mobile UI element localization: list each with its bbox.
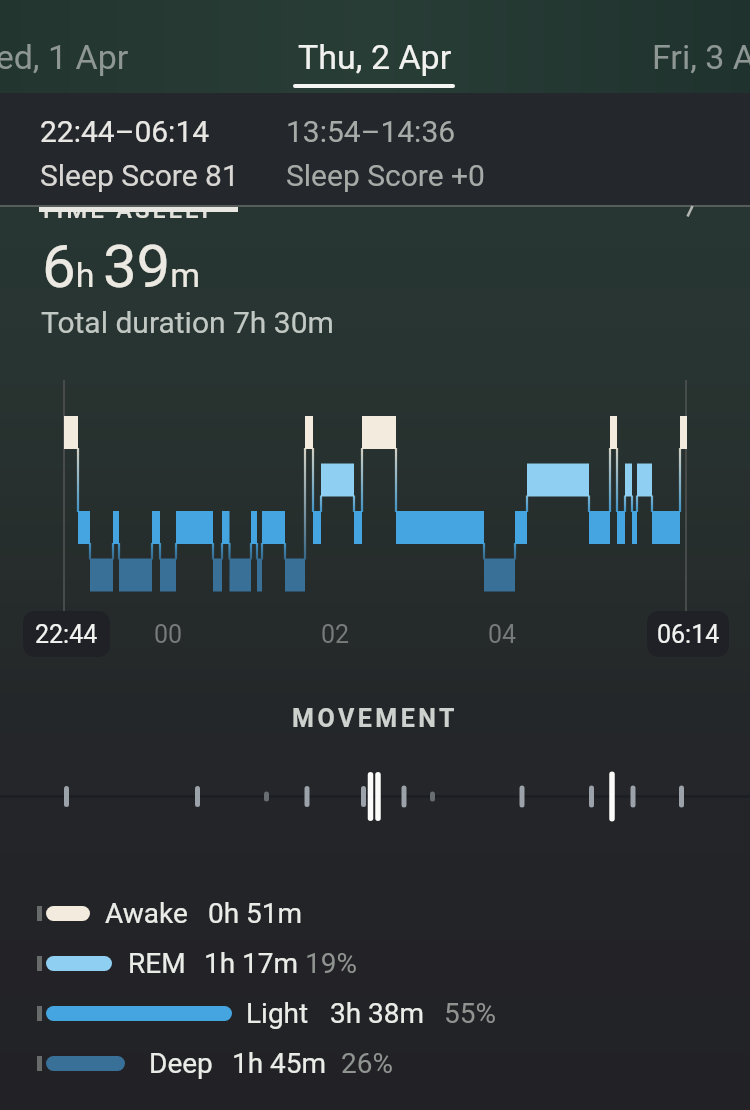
staticText: 13:54–14:36 xyxy=(286,114,456,149)
button[interactable]: Wed, 1 Apr xyxy=(0,27,142,87)
staticText: Sleep Score 81 xyxy=(40,158,239,193)
staticText: Deep xyxy=(149,1047,213,1080)
button[interactable] xyxy=(680,200,700,220)
staticText: Total duration 7h 30m xyxy=(41,305,334,340)
staticText: 3h 38m xyxy=(330,997,425,1030)
staticText: Light xyxy=(246,997,309,1030)
staticText: Fri, 3 Apr xyxy=(652,37,750,77)
staticText: 1h 45m xyxy=(232,1047,327,1080)
staticText: 02 xyxy=(321,620,350,649)
button[interactable]: Thu, 2 Apr xyxy=(280,27,470,87)
staticText: MOVEMENT xyxy=(292,704,459,733)
staticText: Wed, 1 Apr xyxy=(0,37,129,77)
button[interactable]: Fri, 3 Apr xyxy=(624,27,750,87)
staticText: 06:14 xyxy=(657,620,720,649)
staticText: 04 xyxy=(488,620,517,649)
staticText: TIME ASLEEP xyxy=(39,212,220,219)
staticText: 0h 51m xyxy=(208,897,303,930)
staticText: 6h 39m xyxy=(42,231,201,301)
button[interactable] xyxy=(20,93,270,207)
staticText: 26% xyxy=(341,1047,393,1080)
staticText: Thu, 2 Apr xyxy=(298,37,452,77)
staticText: 22:44–06:14 xyxy=(40,114,210,149)
staticText: 1h 17m xyxy=(204,947,299,980)
staticText: REM xyxy=(128,947,186,980)
staticText: 19% xyxy=(305,947,357,980)
staticText: Sleep Score +0 xyxy=(286,158,485,193)
staticText: 22:44 xyxy=(35,620,98,649)
button[interactable] xyxy=(267,93,527,207)
staticText: 55% xyxy=(444,997,496,1030)
staticText: Awake xyxy=(105,897,188,930)
staticText: 00 xyxy=(154,620,183,649)
